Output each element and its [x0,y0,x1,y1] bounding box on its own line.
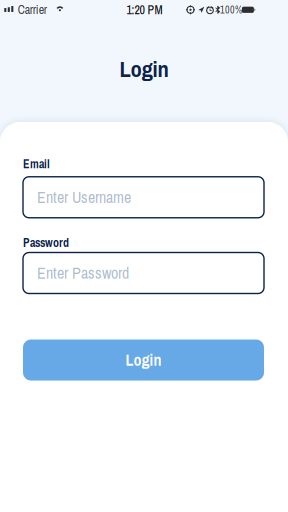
button[interactable]: Enter Username [23,177,264,218]
button[interactable]: Login [23,339,264,380]
staticText: Enter Username [37,187,131,208]
staticText: Enter Password [37,262,129,283]
staticText: Login [125,349,161,370]
staticText: Email [23,156,50,172]
staticText: Carrier [18,2,47,17]
staticText: 100% [220,3,242,17]
staticText: Password [23,235,69,251]
staticText: 1:20 PM [126,2,162,18]
staticText: Login [119,54,168,84]
button[interactable]: Enter Password [23,252,264,293]
